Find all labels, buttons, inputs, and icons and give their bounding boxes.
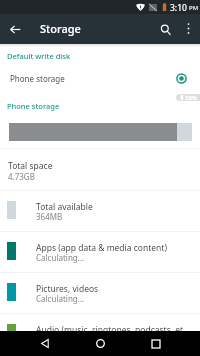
button[interactable]: More options (178, 14, 198, 43)
staticText: Calculating... (36, 252, 85, 263)
staticText: Default write disk (7, 51, 71, 61)
button[interactable]: Phone storage (0, 65, 200, 91)
button[interactable]: Audio (music, ringtones, podcasts, et (0, 313, 200, 354)
staticText: Storage (40, 21, 81, 36)
button[interactable]: Back (34, 333, 55, 354)
button[interactable]: Recents (145, 333, 166, 354)
staticText: Total space (8, 160, 53, 172)
staticText: Phone storage (7, 101, 60, 111)
staticText: 364MB (36, 211, 63, 222)
button[interactable]: Apps (app data & media content) (0, 231, 200, 272)
button[interactable]: Home (90, 333, 111, 354)
staticText: Apps (app data & media content) (36, 242, 167, 254)
staticText: Phone storage (10, 73, 176, 84)
staticText: Audio (music, ringtones, podcasts, et (36, 324, 184, 336)
button[interactable]: Total available (0, 190, 200, 231)
button[interactable]: Pictures, videos (0, 272, 200, 313)
staticText: PM (189, 4, 199, 12)
button[interactable]: Back (7, 21, 23, 37)
staticText: Total available (36, 201, 93, 213)
staticText: Calculating... (36, 293, 85, 304)
button[interactable]: Search (156, 14, 176, 43)
button[interactable]: Total space (0, 149, 200, 190)
staticText: 38% (185, 94, 197, 101)
staticText: 4.73GB (8, 171, 35, 182)
staticText: 3:10 (170, 2, 187, 14)
staticText: Pictures, videos (36, 283, 99, 295)
staticText: Calculating... (36, 334, 85, 345)
